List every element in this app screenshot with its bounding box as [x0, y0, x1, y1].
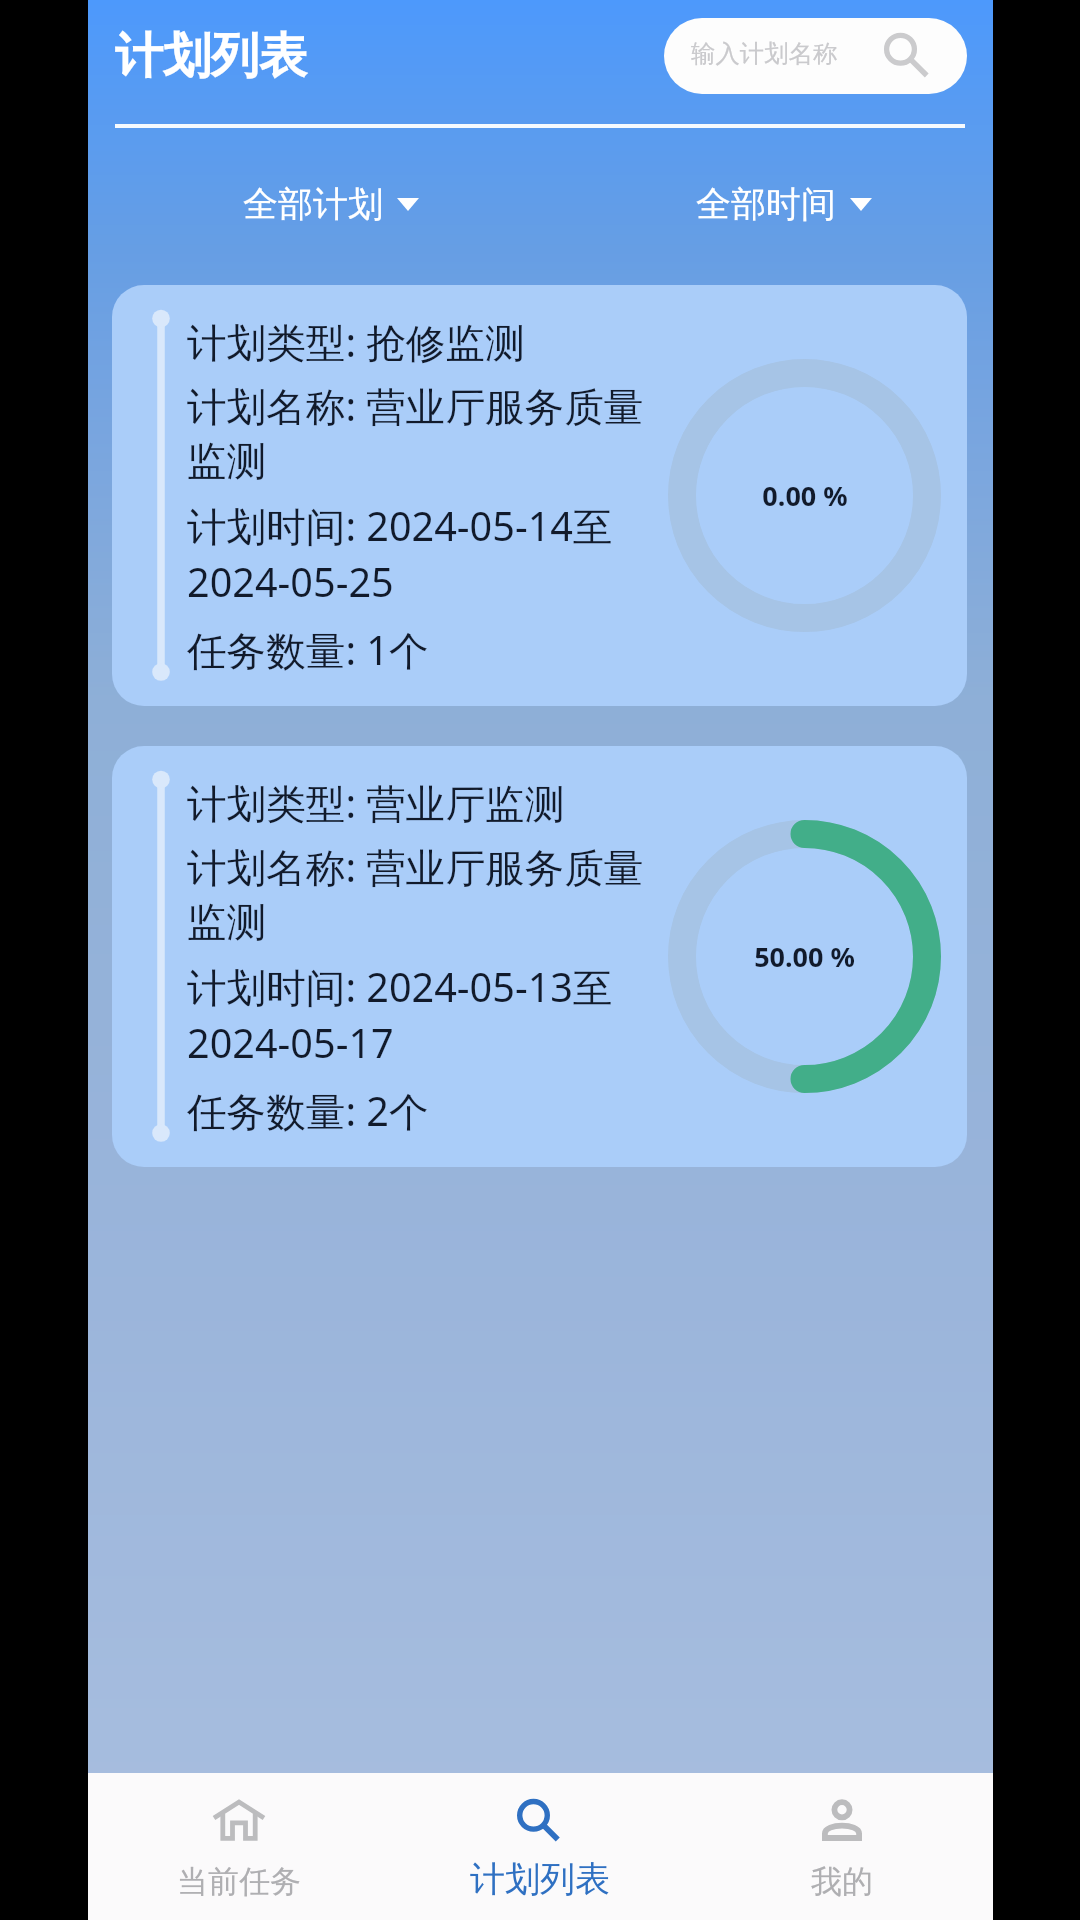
staticText: 计划时间: 2024-05-14至2024-05-25: [187, 499, 657, 609]
staticText: 全部时间: [696, 182, 836, 226]
button[interactable]: Current tasks: [88, 1773, 389, 1920]
staticText: 计划类型: 抢修监测: [187, 315, 525, 369]
staticText: 计划名称: 营业厅服务质量监测: [187, 379, 657, 487]
staticText: 任务数量: 1个: [187, 623, 429, 677]
button[interactable]: 全部时间: [696, 128, 872, 280]
staticText: 0.00 %: [762, 477, 848, 514]
button[interactable]: 输入计划名称: [664, 18, 967, 94]
staticText: 计划列表: [115, 26, 307, 86]
other: Plan list: [514, 1796, 566, 1848]
staticText: 任务数量: 2个: [187, 1084, 429, 1138]
button[interactable]: Profile: [691, 1773, 993, 1920]
button[interactable]: Plan list: [389, 1773, 691, 1920]
button[interactable]: 计划类型: 抢修监测: [112, 285, 967, 706]
staticText: 我的: [811, 1862, 873, 1901]
staticText: 计划时间: 2024-05-13至2024-05-17: [187, 960, 657, 1070]
staticText: 当前任务: [177, 1862, 301, 1901]
staticText: 计划列表: [470, 1857, 610, 1901]
staticText: 全部计划: [243, 182, 383, 226]
staticText: 50.00 %: [754, 938, 855, 975]
staticText: 计划名称: 营业厅服务质量监测: [187, 840, 657, 948]
staticText: 输入计划名称: [691, 39, 838, 70]
other: Current tasks: [213, 1796, 265, 1848]
button[interactable]: 全部计划: [243, 128, 419, 280]
other: Search: [874, 26, 934, 86]
other: Profile: [816, 1796, 868, 1848]
staticText: 计划类型: 营业厅监测: [187, 776, 565, 830]
button[interactable]: 计划类型: 营业厅监测: [112, 746, 967, 1167]
